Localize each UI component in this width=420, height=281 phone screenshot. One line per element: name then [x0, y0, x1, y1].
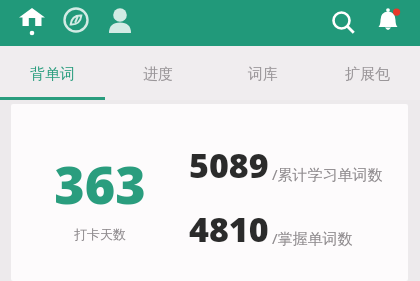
- staticText: /累计学习单词数: [272, 164, 383, 184]
- staticText: 5089: [189, 142, 269, 188]
- button[interactable]: Search: [326, 6, 360, 40]
- staticText: 背单词: [30, 65, 75, 84]
- button[interactable]: Home: [14, 4, 50, 40]
- staticText: /掌握单词数: [272, 228, 353, 248]
- staticText: 363: [54, 148, 146, 219]
- staticText: 进度: [143, 65, 173, 84]
- staticText: 词库: [248, 65, 278, 84]
- staticText: 4810: [189, 206, 269, 252]
- button[interactable]: Notifications: [372, 6, 406, 40]
- button[interactable]: 进度: [105, 46, 210, 100]
- button[interactable]: 背单词: [0, 46, 105, 100]
- button[interactable]: Discover: [60, 6, 92, 38]
- staticText: 打卡天数: [74, 226, 126, 242]
- button[interactable]: 扩展包: [315, 46, 420, 100]
- button[interactable]: 词库: [210, 46, 315, 100]
- button[interactable]: Profile: [104, 6, 136, 38]
- staticText: 扩展包: [345, 65, 390, 84]
- button[interactable]: 363: [11, 104, 408, 281]
